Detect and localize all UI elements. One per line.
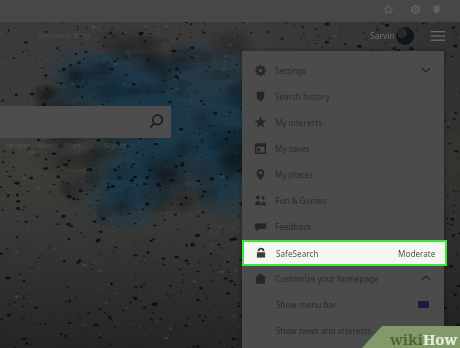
staticText: How bbox=[423, 329, 458, 348]
button[interactable]: SafeSearch bbox=[244, 242, 445, 264]
staticText: SafeSearch bbox=[276, 248, 319, 259]
staticText: Settings bbox=[275, 65, 307, 76]
button[interactable]: Show menu bar bbox=[242, 291, 444, 317]
button[interactable]: Settings bbox=[242, 57, 444, 83]
staticText: Search history bbox=[275, 91, 330, 102]
button[interactable]: Account bbox=[396, 27, 414, 45]
staticText: Sign in bbox=[104, 141, 127, 151]
button[interactable]: My interests bbox=[242, 109, 444, 135]
staticText: Fun & Games bbox=[275, 195, 327, 206]
button[interactable]: Feedback bbox=[242, 213, 444, 239]
staticText: Sarvin bbox=[370, 30, 395, 42]
staticText: wiki bbox=[390, 329, 423, 348]
staticText: Microsoft Bing bbox=[38, 30, 90, 40]
staticText: Show menu bar bbox=[276, 299, 337, 310]
staticText: Images Videos Maps bbox=[6, 141, 82, 151]
staticText: My saves bbox=[275, 143, 310, 154]
staticText: My interests bbox=[275, 117, 323, 128]
button[interactable]: Fun & Games bbox=[242, 187, 444, 213]
button[interactable]: Collections bbox=[410, 4, 421, 15]
button[interactable]: Menu bbox=[431, 31, 445, 41]
staticText: Customize your homepage bbox=[275, 273, 379, 284]
button[interactable]: Show news and interests bbox=[242, 317, 444, 343]
other: Search bbox=[148, 114, 164, 130]
button[interactable]: My places bbox=[242, 161, 444, 187]
button[interactable]: Favorites bbox=[383, 4, 394, 15]
staticText: Show news and interests bbox=[276, 325, 372, 336]
staticText: Feedback bbox=[275, 221, 312, 232]
staticText: My places bbox=[275, 169, 313, 180]
button[interactable]: Customize your homepage bbox=[242, 265, 444, 291]
staticText: Moderate bbox=[398, 248, 436, 259]
button[interactable]: Search bbox=[0, 106, 171, 138]
button[interactable]: My saves bbox=[242, 135, 444, 161]
button[interactable]: Search history bbox=[242, 83, 444, 109]
button[interactable]: Security bbox=[431, 4, 442, 15]
